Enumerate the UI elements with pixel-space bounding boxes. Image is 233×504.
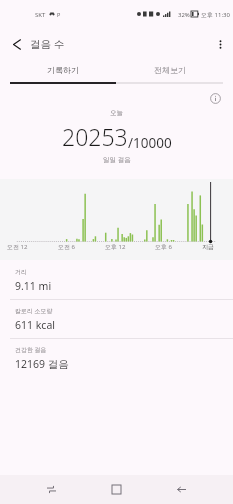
staticText: P [57, 11, 61, 18]
staticText: SKT [35, 11, 46, 19]
button[interactable]: 기록하기 [10, 58, 116, 82]
staticText: 전체보기 [154, 65, 186, 75]
staticText: 걸음 수 [30, 37, 65, 51]
staticText: 12169 걸음 [15, 357, 69, 371]
staticText: 32% [178, 11, 190, 19]
staticText: 기록하기 [47, 65, 79, 75]
button[interactable]: Back [149, 476, 214, 503]
button[interactable]: Home [84, 476, 149, 503]
staticText: 지금 [202, 243, 214, 251]
staticText: 오후 11:30 [201, 11, 230, 19]
button[interactable]: Info [204, 87, 226, 109]
button[interactable]: 거리 [0, 260, 233, 299]
staticText: 칼로리 소모량 [15, 307, 53, 315]
staticText: 건강한 걸음 [15, 346, 47, 354]
button[interactable]: Recent apps [19, 476, 84, 503]
staticText: 일일 걸음 [103, 155, 131, 164]
button[interactable]: More options [207, 28, 233, 60]
staticText: /10000 [128, 134, 172, 152]
button[interactable]: 칼로리 소모량 [0, 299, 233, 338]
staticText: 9.11 mi [15, 279, 52, 293]
staticText: 20253 [62, 121, 128, 152]
staticText: 오늘 [110, 109, 123, 117]
staticText: 611 kcal [15, 318, 55, 332]
staticText: 거리 [15, 268, 27, 276]
staticText: 오전 6 [58, 243, 75, 251]
staticText: 오후 6 [155, 243, 172, 251]
button[interactable]: 전체보기 [116, 58, 223, 82]
staticText: 오후 12 [105, 243, 126, 251]
button[interactable]: Back [0, 28, 30, 60]
staticText: 오전 12 [7, 243, 28, 251]
button[interactable]: 건강한 걸음 [0, 338, 233, 377]
